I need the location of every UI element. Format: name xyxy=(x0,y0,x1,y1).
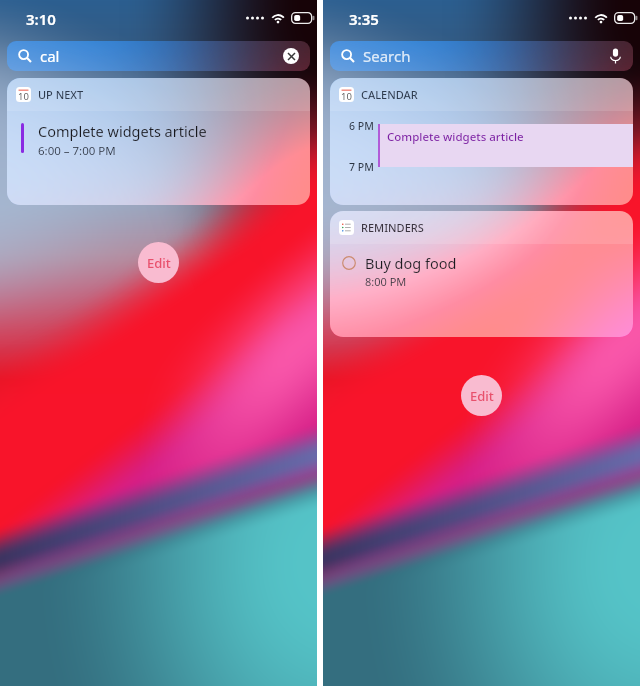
staticText: 10 xyxy=(18,90,29,102)
staticText: 7 PM xyxy=(349,160,374,174)
button[interactable]: Edit xyxy=(138,242,179,283)
button[interactable]: cal xyxy=(7,41,310,71)
button[interactable]: 10 xyxy=(7,78,310,205)
button[interactable]: Edit xyxy=(461,375,502,416)
staticText: 10 xyxy=(341,90,352,102)
staticText: Complete widgets article xyxy=(38,121,207,141)
staticText: 8:00 PM xyxy=(365,274,407,289)
staticText: 6:00 – 7:00 PM xyxy=(38,143,116,159)
other: Voice search xyxy=(609,47,622,65)
staticText: cal xyxy=(40,46,60,66)
staticText: UP NEXT xyxy=(38,87,84,102)
staticText: Buy dog food xyxy=(365,253,457,273)
staticText: Complete widgets article xyxy=(387,129,524,145)
staticText: 3:35 xyxy=(349,9,379,29)
staticText: 6 PM xyxy=(349,119,374,133)
staticText: Edit xyxy=(470,387,494,405)
staticText: REMINDERS xyxy=(361,220,424,235)
staticText: 3:10 xyxy=(26,9,56,29)
button[interactable]: REMINDERS xyxy=(330,211,633,337)
staticText: Search xyxy=(363,46,411,66)
button[interactable]: Clear search xyxy=(283,48,299,64)
button[interactable]: Search xyxy=(330,41,633,71)
staticText: Edit xyxy=(147,254,171,272)
staticText: CALENDAR xyxy=(361,87,418,102)
button[interactable]: 10 xyxy=(330,78,633,205)
